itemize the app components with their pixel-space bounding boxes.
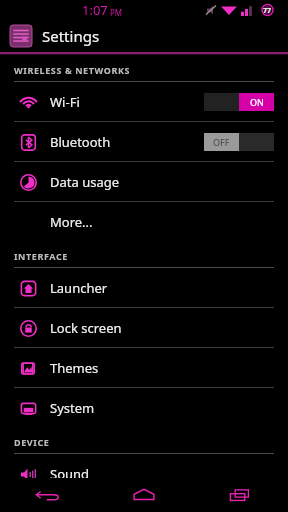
button[interactable]: Settings — [0, 20, 288, 52]
button[interactable]: Home — [96, 478, 192, 512]
button[interactable]: Lock screen — [0, 308, 288, 347]
button[interactable]: Launcher — [0, 268, 288, 307]
button[interactable]: OFF — [204, 133, 274, 151]
button[interactable]: Themes — [0, 348, 288, 387]
staticText: More... — [50, 213, 93, 231]
button[interactable]: Back — [0, 478, 96, 512]
staticText: DEVICE — [14, 436, 50, 448]
staticText: PM — [110, 7, 123, 18]
staticText: Settings — [42, 26, 100, 46]
button[interactable]: Sound — [0, 454, 288, 493]
button[interactable]: Wi-Fi — [0, 82, 288, 121]
staticText: INTERFACE — [14, 250, 68, 262]
staticText: Sound — [50, 465, 90, 483]
button[interactable]: Data usage — [0, 162, 288, 201]
button[interactable]: Recent apps — [192, 478, 288, 512]
button[interactable]: ON — [204, 93, 274, 111]
staticText: Lock screen — [50, 319, 122, 337]
staticText: ON — [250, 96, 264, 108]
staticText: System — [50, 399, 95, 417]
button[interactable]: More... — [0, 202, 288, 241]
staticText: Wi-Fi — [50, 93, 80, 111]
staticText: 1:07 — [82, 1, 108, 19]
staticText: Data usage — [50, 173, 120, 191]
staticText: Themes — [50, 359, 99, 377]
staticText: WIRELESS & NETWORKS — [14, 64, 131, 76]
staticText: OFF — [213, 136, 230, 148]
staticText: 77 — [263, 6, 272, 16]
button[interactable]: Bluetooth — [0, 122, 288, 161]
staticText: Launcher — [50, 279, 108, 297]
staticText: Bluetooth — [50, 133, 111, 151]
button[interactable]: System — [0, 388, 288, 427]
